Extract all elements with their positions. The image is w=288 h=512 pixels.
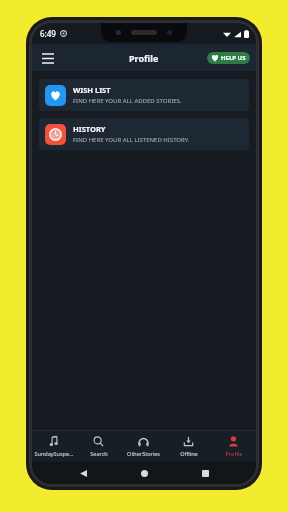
- staticText: FIND HERE YOUR ALL ADDED STORIES.: [73, 97, 182, 105]
- button[interactable]: Offline: [166, 431, 211, 462]
- staticText: HISTORY: [73, 124, 106, 134]
- button[interactable]: WISH LIST: [39, 79, 249, 111]
- button[interactable]: Profile: [211, 431, 256, 462]
- staticText: WISH LIST: [73, 85, 111, 95]
- button[interactable]: HELP US: [207, 52, 250, 64]
- staticText: Profile: [225, 450, 243, 457]
- staticText: Search: [90, 450, 108, 457]
- button[interactable]: Search: [76, 431, 121, 462]
- staticText: FIND HERE YOUR ALL LISTENED HISTORY.: [73, 136, 190, 144]
- staticText: Offline: [180, 450, 198, 457]
- staticText: 6:49: [40, 28, 56, 39]
- staticText: Profile: [129, 52, 159, 64]
- button[interactable]: OtherStories: [121, 431, 166, 462]
- staticText: HELP US: [221, 54, 246, 62]
- button[interactable]: Back: [73, 463, 93, 483]
- staticText: OtherStories: [127, 450, 160, 457]
- button[interactable]: HISTORY: [39, 118, 249, 150]
- button[interactable]: Recents: [195, 463, 215, 483]
- staticText: SundaySuspe...: [34, 450, 74, 457]
- button[interactable]: Menu: [38, 48, 58, 68]
- button[interactable]: SundaySuspe...: [32, 431, 76, 462]
- button[interactable]: Home: [134, 463, 154, 483]
